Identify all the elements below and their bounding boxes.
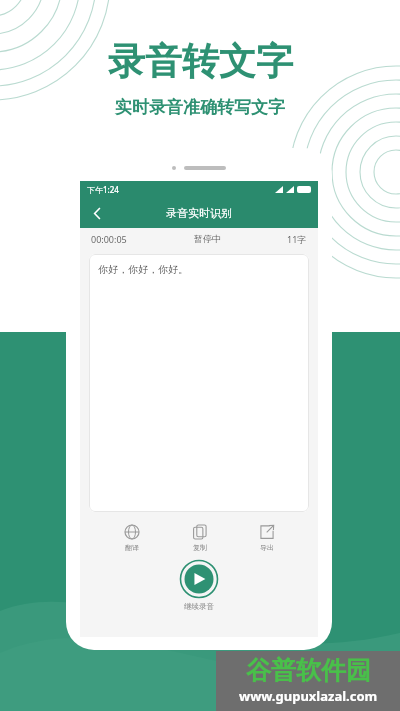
button[interactable]: 继续录音: [180, 560, 218, 598]
button[interactable]: Back: [80, 198, 318, 228]
button[interactable]: 导出: [233, 522, 300, 554]
button[interactable]: Back: [86, 202, 108, 224]
staticText: 暂停中: [194, 233, 221, 244]
staticText: 翻译: [125, 543, 139, 552]
staticText: www.gupuxlazal.com: [239, 687, 378, 705]
staticText: 实时录音准确转写文字: [115, 97, 285, 118]
staticText: 谷普软件园: [246, 655, 371, 686]
button[interactable]: 你好，你好，你好。: [89, 254, 309, 512]
staticText: 继续录音: [184, 602, 214, 611]
staticText: 录音实时识别: [166, 206, 232, 220]
button[interactable]: 复制: [166, 522, 233, 554]
staticText: 录音转文字: [108, 38, 293, 85]
staticText: 00:00:05: [91, 233, 127, 245]
staticText: 11字: [287, 233, 307, 245]
button[interactable]: 翻译: [98, 522, 166, 554]
staticText: 复制: [193, 543, 207, 552]
staticText: 导出: [260, 543, 274, 552]
staticText: 下午1:24: [87, 184, 119, 195]
staticText: 你好，你好，你好。: [98, 263, 188, 276]
